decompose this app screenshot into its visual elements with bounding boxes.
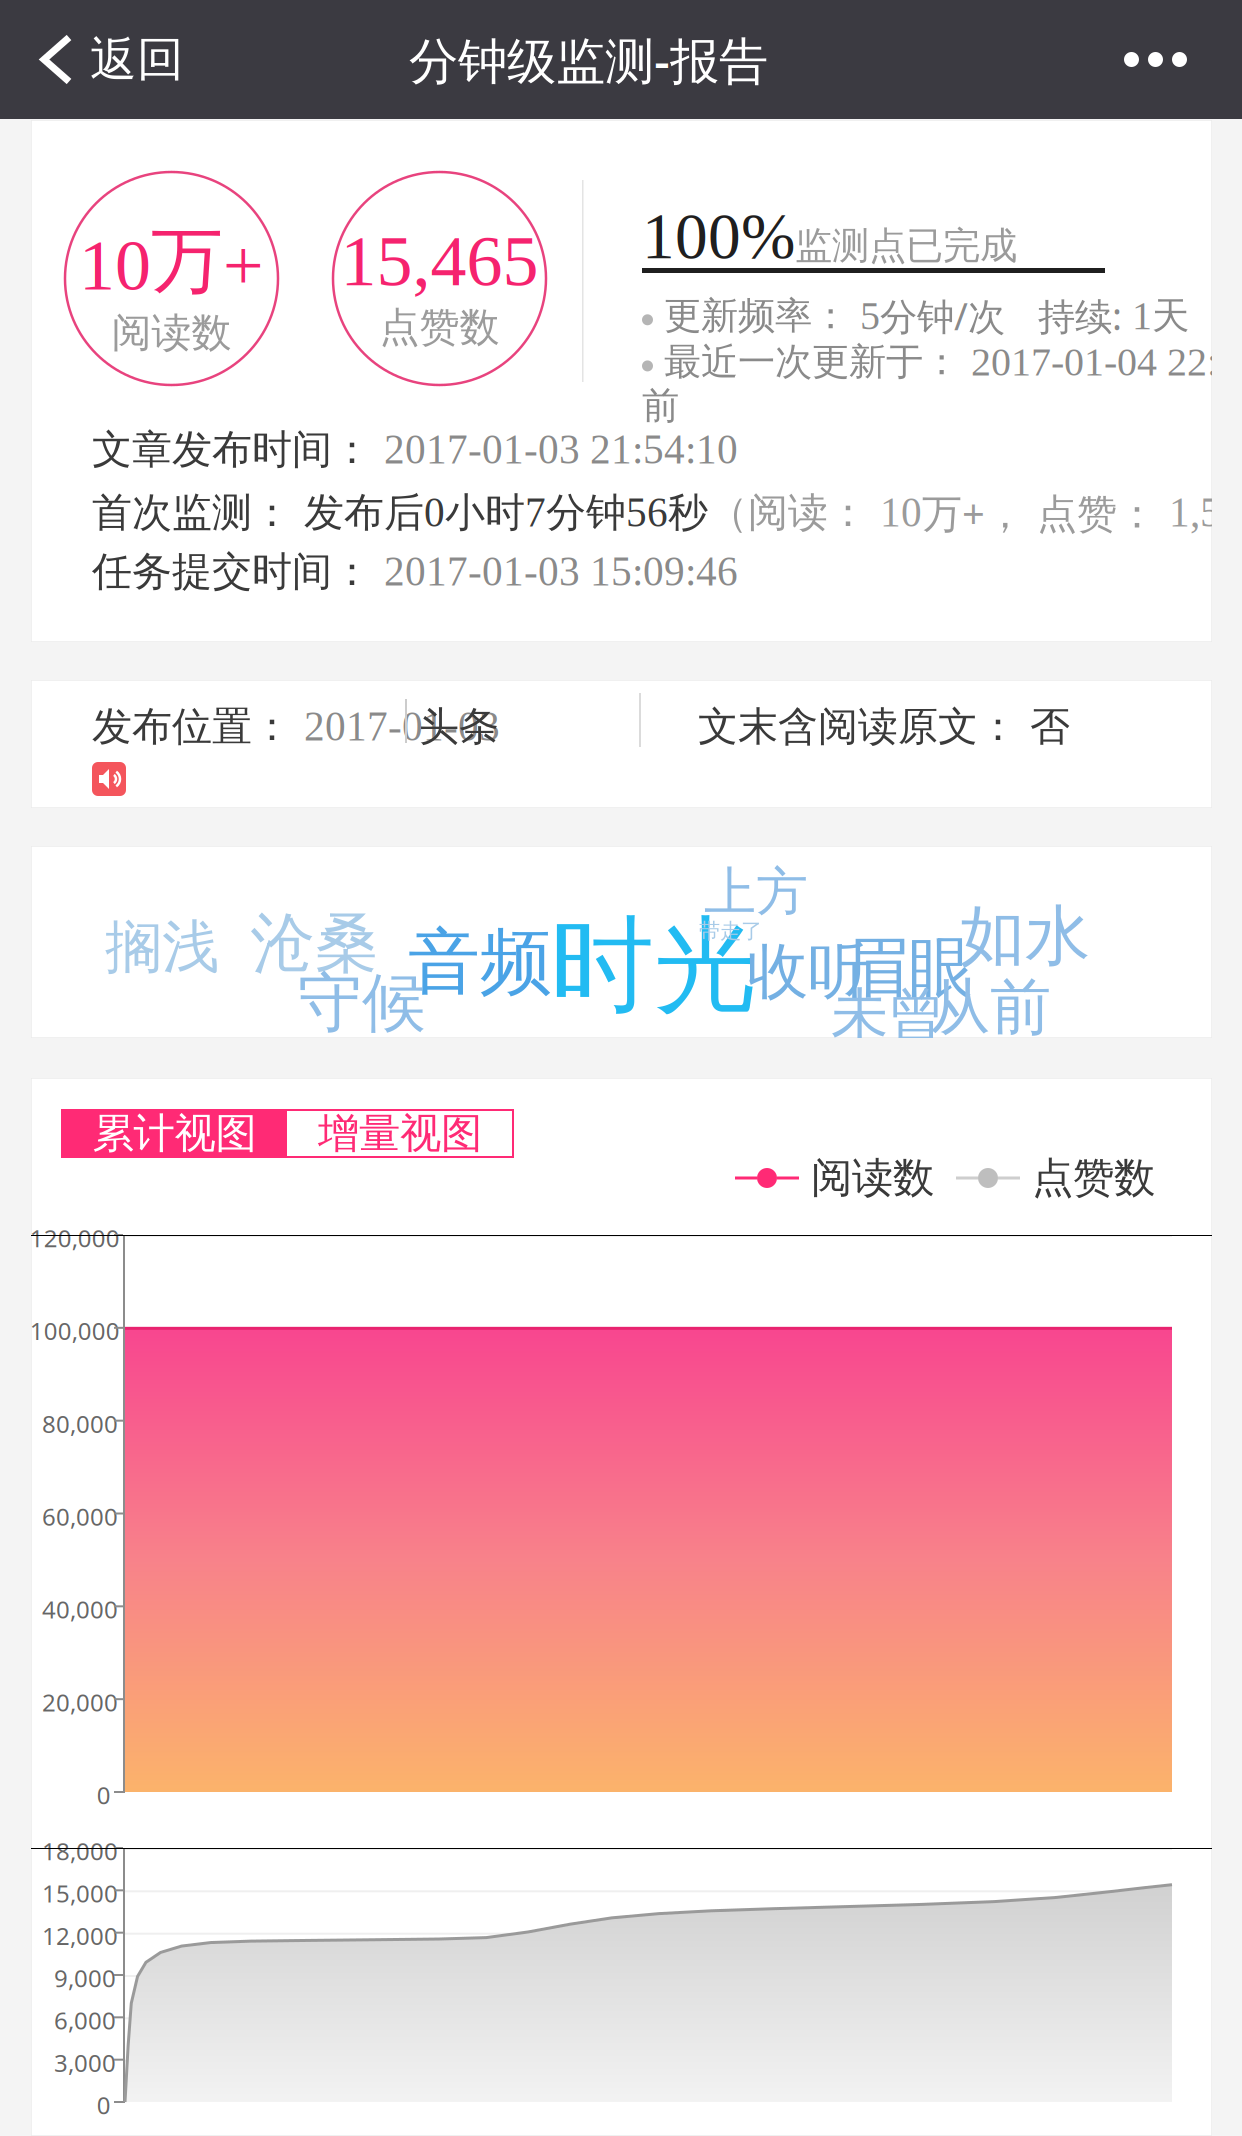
staticText: 0	[424, 490, 445, 535]
staticText: 分钟/次 持续:	[880, 291, 1132, 341]
staticText: 20,000	[42, 1686, 118, 1718]
staticText: 2017-01-03	[304, 704, 500, 749]
staticText: 增量视图	[318, 1108, 482, 1159]
staticText: 搁浅	[105, 912, 219, 982]
staticText: 2017-01-03 15:09:46	[384, 549, 738, 594]
staticText: 9,000	[54, 1962, 116, 1994]
staticText: 如水	[960, 896, 1090, 976]
staticText: 3,000	[54, 2047, 116, 2079]
staticText: 12,000	[42, 1920, 118, 1952]
staticText: 音频	[408, 918, 552, 1006]
staticText: 首次监测： 发布后	[92, 488, 424, 537]
staticText: 2017-01-04 22:02:06	[971, 340, 1242, 384]
staticText: 守候	[298, 964, 426, 1043]
staticText: 1,516)	[1169, 490, 1242, 535]
staticText: 100%	[642, 200, 795, 272]
staticText: 更新频率：	[653, 293, 860, 339]
staticText: 上方	[704, 860, 808, 924]
staticText: 天	[1152, 293, 1189, 339]
staticText: 18,000	[42, 1835, 118, 1867]
staticText: 监测点已完成	[795, 223, 1017, 269]
staticText: 收听	[747, 934, 869, 1009]
staticText: 6,000	[54, 2004, 116, 2036]
staticText: 0	[97, 2089, 111, 2121]
staticText: 2017-01-03 21:54:10	[384, 427, 738, 472]
staticText: 分钟级监测-报告	[409, 27, 768, 92]
staticText: 10	[880, 490, 922, 535]
staticText: 累计视图	[92, 1108, 256, 1159]
staticText: 60,000	[42, 1500, 118, 1532]
staticText: 0	[97, 1779, 111, 1811]
staticText: 10万+	[79, 216, 264, 306]
staticText: 眉眼	[843, 928, 973, 1008]
staticText: 头条	[419, 702, 499, 751]
button[interactable]: 累计视图	[62, 1110, 287, 1157]
button[interactable]: More options	[1089, 0, 1222, 119]
staticText: 时光	[550, 902, 758, 1030]
staticText: 万+， 点赞：	[922, 486, 1169, 539]
staticText: 小时	[445, 488, 525, 537]
staticText: 返回	[90, 31, 184, 88]
staticText: 任务提交时间：	[92, 547, 384, 596]
staticText: 阅读数	[111, 308, 231, 357]
button[interactable]: 增量视图	[287, 1110, 513, 1157]
staticText: 5	[860, 294, 880, 338]
staticText: 点赞数	[379, 303, 499, 352]
staticText: 1	[1132, 294, 1152, 338]
staticText: 100,000	[30, 1315, 120, 1347]
staticText: 发布位置：	[92, 702, 304, 751]
button[interactable]: 返回	[0, 0, 210, 119]
staticText: 从前	[929, 970, 1051, 1045]
staticText: 秒	[668, 488, 708, 537]
staticText: 最近一次更新于：	[653, 339, 971, 385]
staticText: 沧桑	[251, 904, 379, 983]
staticText: 120,000	[30, 1222, 120, 1254]
staticText: 40,000	[42, 1593, 118, 1625]
staticText: 文章发布时间：	[92, 425, 384, 474]
staticText: 未曾	[831, 980, 945, 1050]
staticText: 7	[525, 490, 546, 535]
staticText: 点赞数	[1020, 1153, 1155, 1203]
staticText: 80,000	[42, 1408, 118, 1440]
staticText: 15,465	[340, 221, 538, 301]
staticText: 15,000	[42, 1877, 118, 1909]
staticText: （阅读：	[708, 488, 880, 537]
staticText: 带走了	[699, 918, 762, 944]
staticText: 前	[642, 383, 679, 429]
staticText: 阅读数	[799, 1153, 934, 1203]
staticText: 文末含阅读原文： 否	[698, 702, 1070, 751]
staticText: 分钟	[546, 488, 626, 537]
staticText: 56	[626, 490, 668, 535]
